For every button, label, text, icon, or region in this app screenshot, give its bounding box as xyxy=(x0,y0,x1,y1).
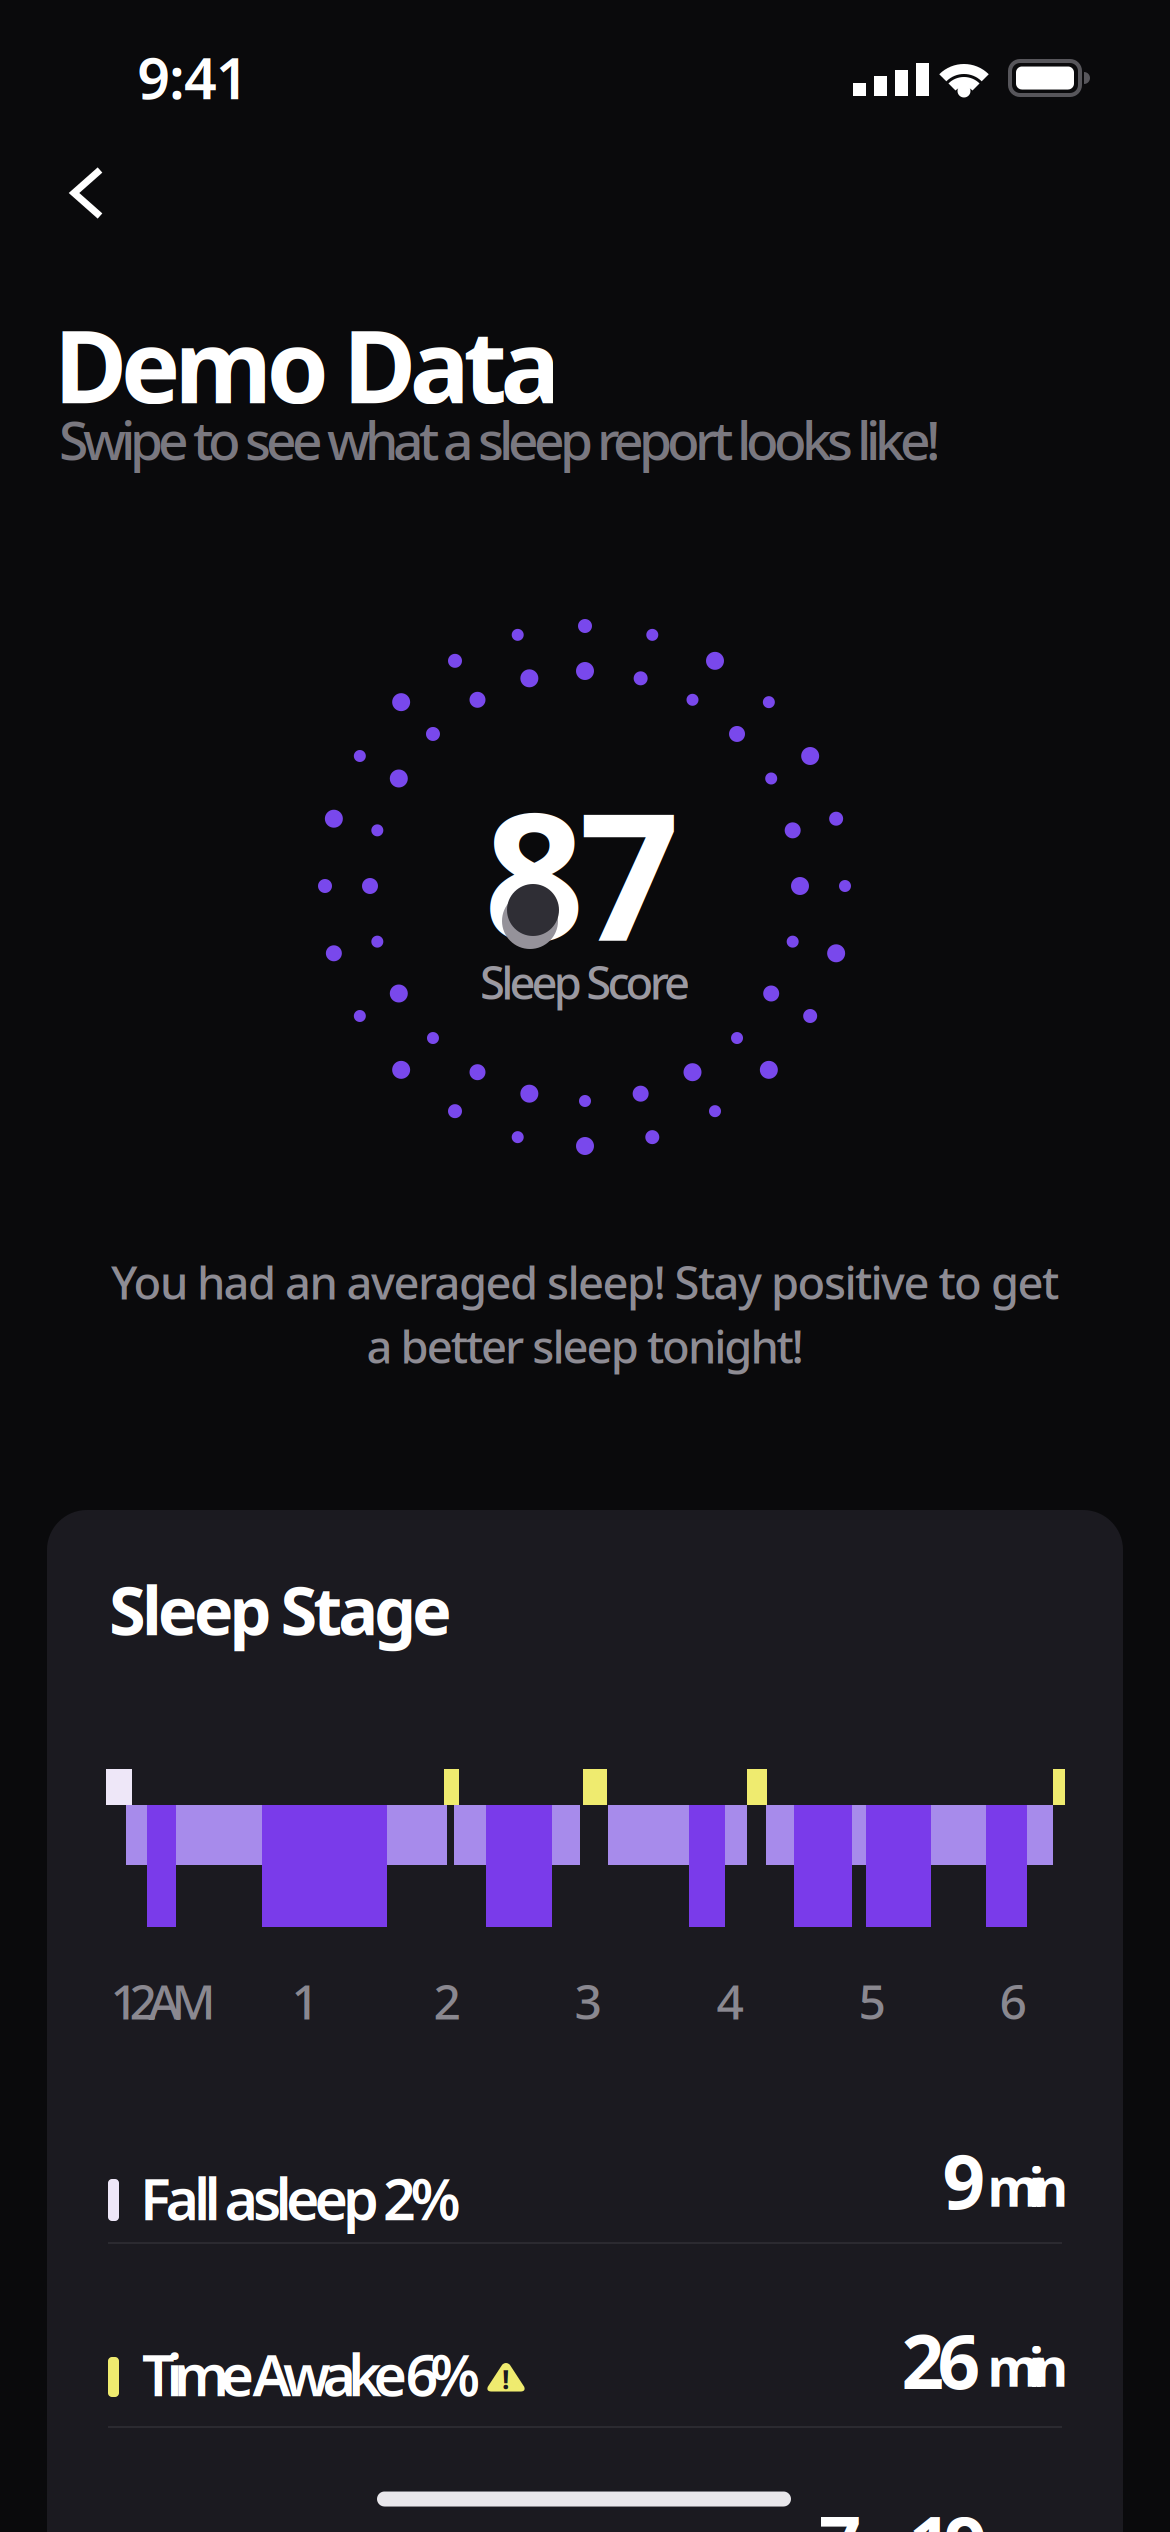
staticText: You had an averaged sleep! Stay positive… xyxy=(111,1252,1059,1312)
staticText: 2 xyxy=(433,1969,460,2033)
staticText: Swipe to see what a sleep report looks l… xyxy=(59,404,941,475)
staticText: 19 xyxy=(909,2492,987,2532)
staticText: Fall asleep 2% xyxy=(140,2160,460,2236)
staticText: 6 xyxy=(999,1969,1026,2033)
staticText: 12AM xyxy=(110,1969,215,2033)
staticText: 9:41 xyxy=(137,39,249,115)
button[interactable]: Back xyxy=(56,153,118,233)
staticText: min xyxy=(987,2151,1068,2221)
staticText: 7 xyxy=(818,2492,861,2532)
staticText: 3 xyxy=(574,1969,601,2033)
staticText: Time Awake 6% xyxy=(142,2336,480,2412)
staticText: Demo Data xyxy=(54,298,560,431)
staticText: Sleep Score xyxy=(480,952,690,1012)
staticText: 9 xyxy=(942,2130,985,2230)
staticText: 1 xyxy=(291,1969,318,2033)
staticText: a better sleep tonight! xyxy=(366,1316,804,1376)
staticText: 4 xyxy=(716,1969,743,2033)
staticText: Sleep Stage xyxy=(109,1565,452,1653)
staticText: min xyxy=(987,2331,1068,2401)
staticText: 26 xyxy=(901,2310,980,2410)
staticText: 87 xyxy=(484,755,680,989)
staticText: 5 xyxy=(858,1969,885,2033)
staticText: ! xyxy=(502,2361,510,2397)
